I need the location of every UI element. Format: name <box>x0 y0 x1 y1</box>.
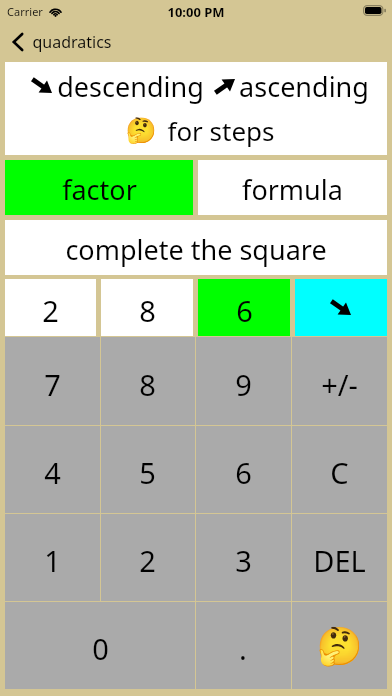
staticText: formula <box>242 171 343 208</box>
button[interactable]: factor <box>5 160 193 215</box>
staticText: 6 <box>235 453 252 492</box>
button[interactable]: 6 <box>195 426 291 513</box>
staticText: 2 <box>42 291 59 330</box>
staticText: 8 <box>139 291 156 330</box>
button[interactable]: DEL <box>291 514 387 601</box>
button[interactable]: 8 <box>100 337 195 425</box>
button[interactable]: 9 <box>195 337 291 425</box>
staticText: quadratics <box>32 31 112 53</box>
staticText: 7 <box>44 365 61 404</box>
staticText: 6 <box>236 291 253 330</box>
button[interactable]: 2 <box>100 514 195 601</box>
staticText: Carrier <box>7 4 43 19</box>
staticText: 5 <box>139 453 156 492</box>
button[interactable]: . <box>195 602 291 689</box>
staticText: complete the square <box>65 231 327 268</box>
staticText: C <box>330 453 349 492</box>
staticText: 1 <box>44 541 61 580</box>
button[interactable]: Back to quadratics <box>0 21 392 62</box>
button[interactable]: 8 <box>101 279 193 336</box>
button[interactable]: 5 <box>100 426 195 513</box>
staticText: 🤔 <box>125 116 157 145</box>
staticText: 4 <box>44 453 61 492</box>
staticText: 0 <box>92 629 109 668</box>
button[interactable]: 2 <box>5 279 96 336</box>
staticText: descending <box>57 68 204 105</box>
staticText: ascending <box>239 68 369 105</box>
staticText: 9 <box>235 365 252 404</box>
button[interactable]: C <box>291 426 387 513</box>
button[interactable]: 3 <box>195 514 291 601</box>
staticText: 10:00 PM <box>167 3 225 21</box>
staticText: factor <box>62 171 137 208</box>
button[interactable]: complete the square <box>5 220 387 275</box>
staticText: DEL <box>313 541 366 580</box>
button[interactable]: 6 <box>198 279 290 336</box>
staticText: 3 <box>235 541 252 580</box>
button[interactable]: +/- <box>291 337 387 425</box>
staticText: . <box>239 629 247 668</box>
button[interactable]: 7 <box>5 337 100 425</box>
button[interactable]: 4 <box>5 426 100 513</box>
staticText: 🤔 <box>316 625 363 668</box>
staticText: 8 <box>139 365 156 404</box>
staticText: for steps <box>167 113 275 148</box>
button[interactable]: backspace <box>295 279 387 336</box>
button[interactable]: 1 <box>5 514 100 601</box>
button[interactable]: steps <box>291 602 387 689</box>
button[interactable]: formula <box>198 160 387 215</box>
staticText: 2 <box>139 541 156 580</box>
staticText: +/- <box>321 365 358 404</box>
button[interactable]: 0 <box>5 602 195 689</box>
